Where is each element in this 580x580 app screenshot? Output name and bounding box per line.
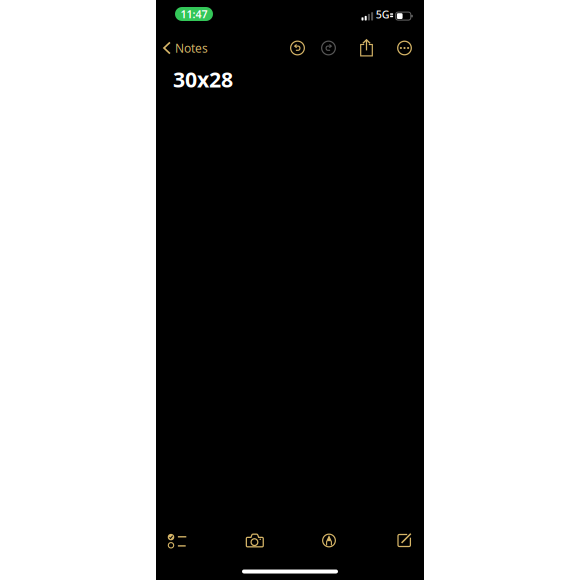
button[interactable]: Checklist bbox=[154, 528, 196, 552]
button[interactable]: Undo bbox=[285, 36, 309, 60]
button[interactable]: Share bbox=[354, 36, 378, 60]
button[interactable]: Markup bbox=[308, 528, 350, 552]
button[interactable]: New note bbox=[384, 528, 425, 552]
button[interactable]: Note body bbox=[156, 61, 424, 525]
button[interactable]: Redo bbox=[316, 36, 340, 60]
button[interactable]: More options bbox=[392, 36, 416, 60]
staticText: 30x28 bbox=[173, 65, 233, 93]
button[interactable]: Camera bbox=[234, 528, 276, 552]
button[interactable]: Notes bbox=[156, 35, 208, 61]
staticText: Notes bbox=[175, 40, 208, 56]
staticText: 11:47 bbox=[180, 7, 207, 21]
staticText: 5G bbox=[376, 7, 390, 21]
